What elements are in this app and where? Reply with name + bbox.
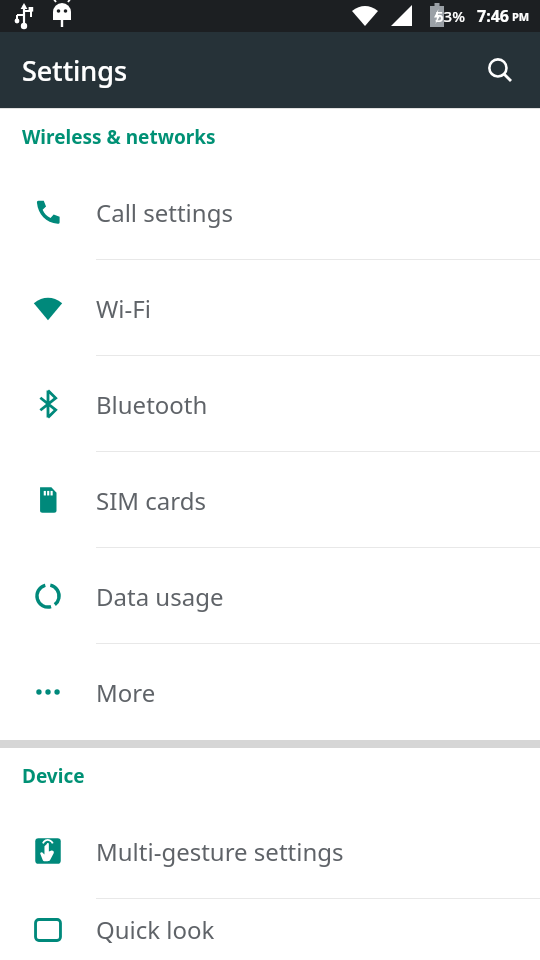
button[interactable]: Wi-Fi (0, 260, 540, 356)
staticText: Wireless & networks (22, 124, 216, 150)
staticText: Wi-Fi (96, 292, 151, 325)
staticText: Device (22, 763, 85, 789)
staticText: Bluetooth (96, 388, 208, 421)
staticText: Call settings (96, 196, 233, 229)
staticText: SIM cards (96, 484, 206, 517)
button[interactable]: Data usage (0, 548, 540, 644)
button[interactable]: More (0, 644, 540, 740)
staticText: Quick look (96, 913, 215, 946)
staticText: 7:46 (477, 5, 509, 27)
button[interactable]: Multi-gesture settings (0, 803, 540, 899)
staticText: Multi-gesture settings (96, 835, 344, 868)
button[interactable]: Call settings (0, 164, 540, 260)
button[interactable]: Bluetooth (0, 356, 540, 452)
staticText: PM (512, 9, 530, 24)
staticText: Settings (22, 52, 128, 89)
staticText: More (96, 676, 156, 709)
button[interactable]: Quick look (0, 899, 540, 960)
staticText: 53% (435, 6, 465, 26)
button[interactable]: SIM cards (0, 452, 540, 548)
staticText: Data usage (96, 580, 224, 613)
button[interactable]: Search (476, 46, 524, 94)
